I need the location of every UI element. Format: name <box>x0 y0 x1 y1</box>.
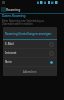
staticText: Roaming-Einstellungen anzeigen <box>5 32 52 36</box>
button[interactable]: E-Mail <box>3 40 57 48</box>
button[interactable]: Abbrechen <box>19 68 41 76</box>
button[interactable]: Nein <box>3 58 57 66</box>
staticText: Daten-Roaming <box>2 14 26 18</box>
staticText: Abbrechen <box>23 70 37 74</box>
button[interactable]: Daten-Roaming <box>0 14 64 25</box>
button[interactable]: Navigate up <box>0 5 6 13</box>
button[interactable]: Intranet <box>3 49 57 57</box>
staticText: E-Mail <box>5 42 14 46</box>
staticText: Roaming <box>6 7 21 12</box>
staticText: Intranet <box>5 51 17 55</box>
staticText: Nein <box>5 60 12 64</box>
staticText: Beim Roaming eine Verbindung zu Datendie… <box>2 19 45 25</box>
